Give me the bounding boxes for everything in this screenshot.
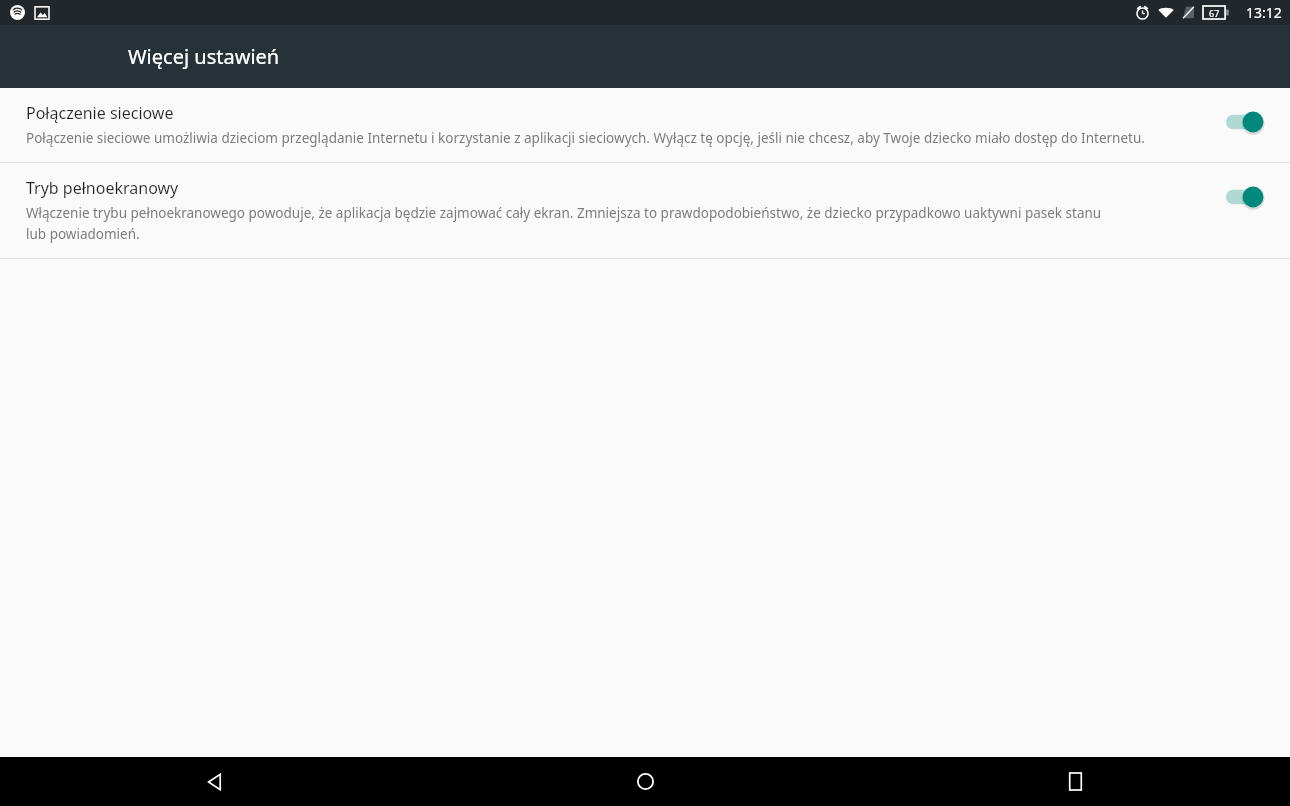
- staticText: Tryb pełnoekranowy: [26, 177, 179, 199]
- staticText: Więcej ustawień: [128, 43, 280, 70]
- staticText: Włączenie trybu pełnoekranowego powoduje…: [26, 204, 1118, 243]
- staticText: Połączenie sieciowe: [26, 102, 174, 124]
- button[interactable]: Połączenie sieciowe: [0, 88, 1290, 162]
- button[interactable]: Tryb pełnoekranowy: [0, 163, 1290, 258]
- button[interactable]: Home: [430, 757, 860, 806]
- button[interactable]: Back: [0, 757, 430, 806]
- button[interactable]: Recent apps: [860, 757, 1290, 806]
- staticText: 13:12: [1246, 3, 1282, 22]
- button[interactable]: Połączenie sieciowe: [1220, 106, 1272, 138]
- button[interactable]: Tryb pełnoekranowy: [1220, 181, 1272, 213]
- staticText: 67: [1209, 7, 1220, 19]
- staticText: Połączenie sieciowe umożliwia dzieciom p…: [26, 129, 1145, 147]
